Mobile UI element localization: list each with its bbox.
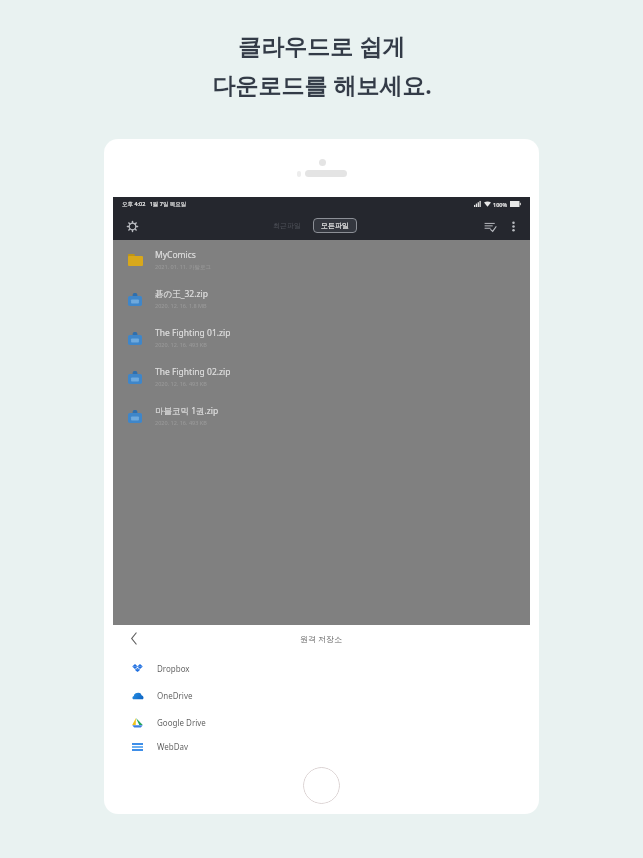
button[interactable]: 최근파일 <box>273 221 301 230</box>
staticText: 최근파일 <box>273 221 301 230</box>
button[interactable]: Dropbox <box>113 655 530 682</box>
button[interactable]: 碁の王_32.zip <box>113 279 530 318</box>
staticText: 100% <box>493 201 508 208</box>
staticText: 2020. 12. 16. 493 KB <box>155 419 207 426</box>
button[interactable]: Settings <box>121 215 143 237</box>
button[interactable]: MyComics <box>113 240 530 279</box>
button[interactable]: More options <box>504 217 522 235</box>
staticText: Dropbox <box>157 663 190 674</box>
staticText: The Fighting 02.zip <box>155 366 231 378</box>
staticText: 2021. 01. 11. 카탈로그 <box>155 263 211 271</box>
staticText: 클라우드로 쉽게 <box>238 30 405 61</box>
staticText: 碁の王_32.zip <box>155 288 208 300</box>
button[interactable]: Google Drive <box>113 709 530 736</box>
button[interactable]: The Fighting 01.zip <box>113 318 530 357</box>
button[interactable]: 마블코믹 1권.zip <box>113 396 530 435</box>
staticText: 다운로드를 해보세요. <box>212 69 432 100</box>
staticText: 마블코믹 1권.zip <box>155 405 219 417</box>
staticText: 오후 4:02 1월 7일 목요일 <box>122 200 187 208</box>
button[interactable]: Sort <box>480 216 500 236</box>
staticText: WebDav <box>157 741 189 752</box>
button[interactable]: 모든파일 <box>313 218 357 233</box>
staticText: OneDrive <box>157 690 193 701</box>
button[interactable]: WebDav <box>113 736 530 757</box>
staticText: Google Drive <box>157 717 206 728</box>
staticText: 2020. 12. 16. 1.8 MB <box>155 302 207 309</box>
button[interactable]: Back <box>125 629 143 647</box>
staticText: 모든파일 <box>321 221 349 230</box>
button[interactable]: Home <box>303 767 340 804</box>
staticText: The Fighting 01.zip <box>155 327 231 339</box>
button[interactable]: The Fighting 02.zip <box>113 357 530 396</box>
staticText: MyComics <box>155 249 196 261</box>
staticText: 2020. 12. 16. 493 KB <box>155 380 207 387</box>
staticText: 원격 저장소 <box>300 633 343 644</box>
button[interactable]: OneDrive <box>113 682 530 709</box>
staticText: 2020. 12. 16. 493 KB <box>155 341 207 348</box>
